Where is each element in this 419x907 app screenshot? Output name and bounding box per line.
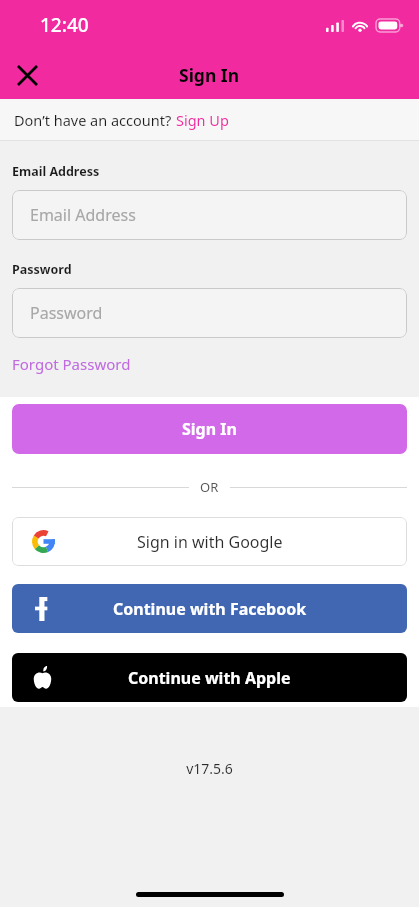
staticText: Sign In <box>179 63 240 87</box>
button[interactable]: Continue with Apple <box>12 653 407 702</box>
staticText: Don’t have an account? <box>14 110 176 130</box>
staticText: Sign In <box>182 418 237 440</box>
button[interactable]: Don’t have an account? <box>14 110 229 130</box>
button[interactable]: Email Address <box>12 190 407 240</box>
button[interactable]: Sign In <box>12 404 407 454</box>
staticText: Forgot Password <box>12 354 131 374</box>
staticText: Sign in with Google <box>137 531 283 553</box>
staticText: Email Address <box>30 204 136 226</box>
staticText: 12:40 <box>40 12 89 38</box>
button[interactable]: Forgot Password <box>12 352 131 376</box>
staticText: Email Address <box>12 163 100 180</box>
button[interactable]: Sign in with Google <box>12 517 407 566</box>
staticText: Continue with Apple <box>128 667 291 689</box>
staticText: OR <box>200 478 219 496</box>
staticText: Password <box>30 302 103 324</box>
button[interactable]: Continue with Facebook <box>12 584 407 633</box>
button[interactable]: Close <box>8 56 46 94</box>
button[interactable]: Password <box>12 288 407 338</box>
staticText: Continue with Facebook <box>113 598 307 620</box>
staticText: Sign Up <box>176 110 229 130</box>
staticText: v17.5.6 <box>186 759 233 778</box>
staticText: Password <box>12 261 72 278</box>
